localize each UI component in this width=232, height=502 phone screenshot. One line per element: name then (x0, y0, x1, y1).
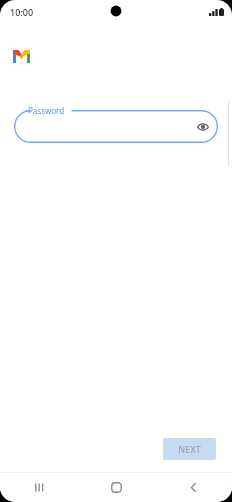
staticText: 10:00 (10, 6, 34, 18)
button[interactable]: Home (78, 473, 155, 502)
button[interactable]: Show password (194, 118, 211, 135)
button[interactable]: Back (155, 473, 232, 502)
button[interactable]: Recents (0, 473, 78, 502)
staticText: NEXT (178, 443, 201, 455)
staticText: Password (28, 105, 65, 116)
button[interactable]: Password (14, 110, 218, 143)
button[interactable]: NEXT (163, 438, 216, 460)
